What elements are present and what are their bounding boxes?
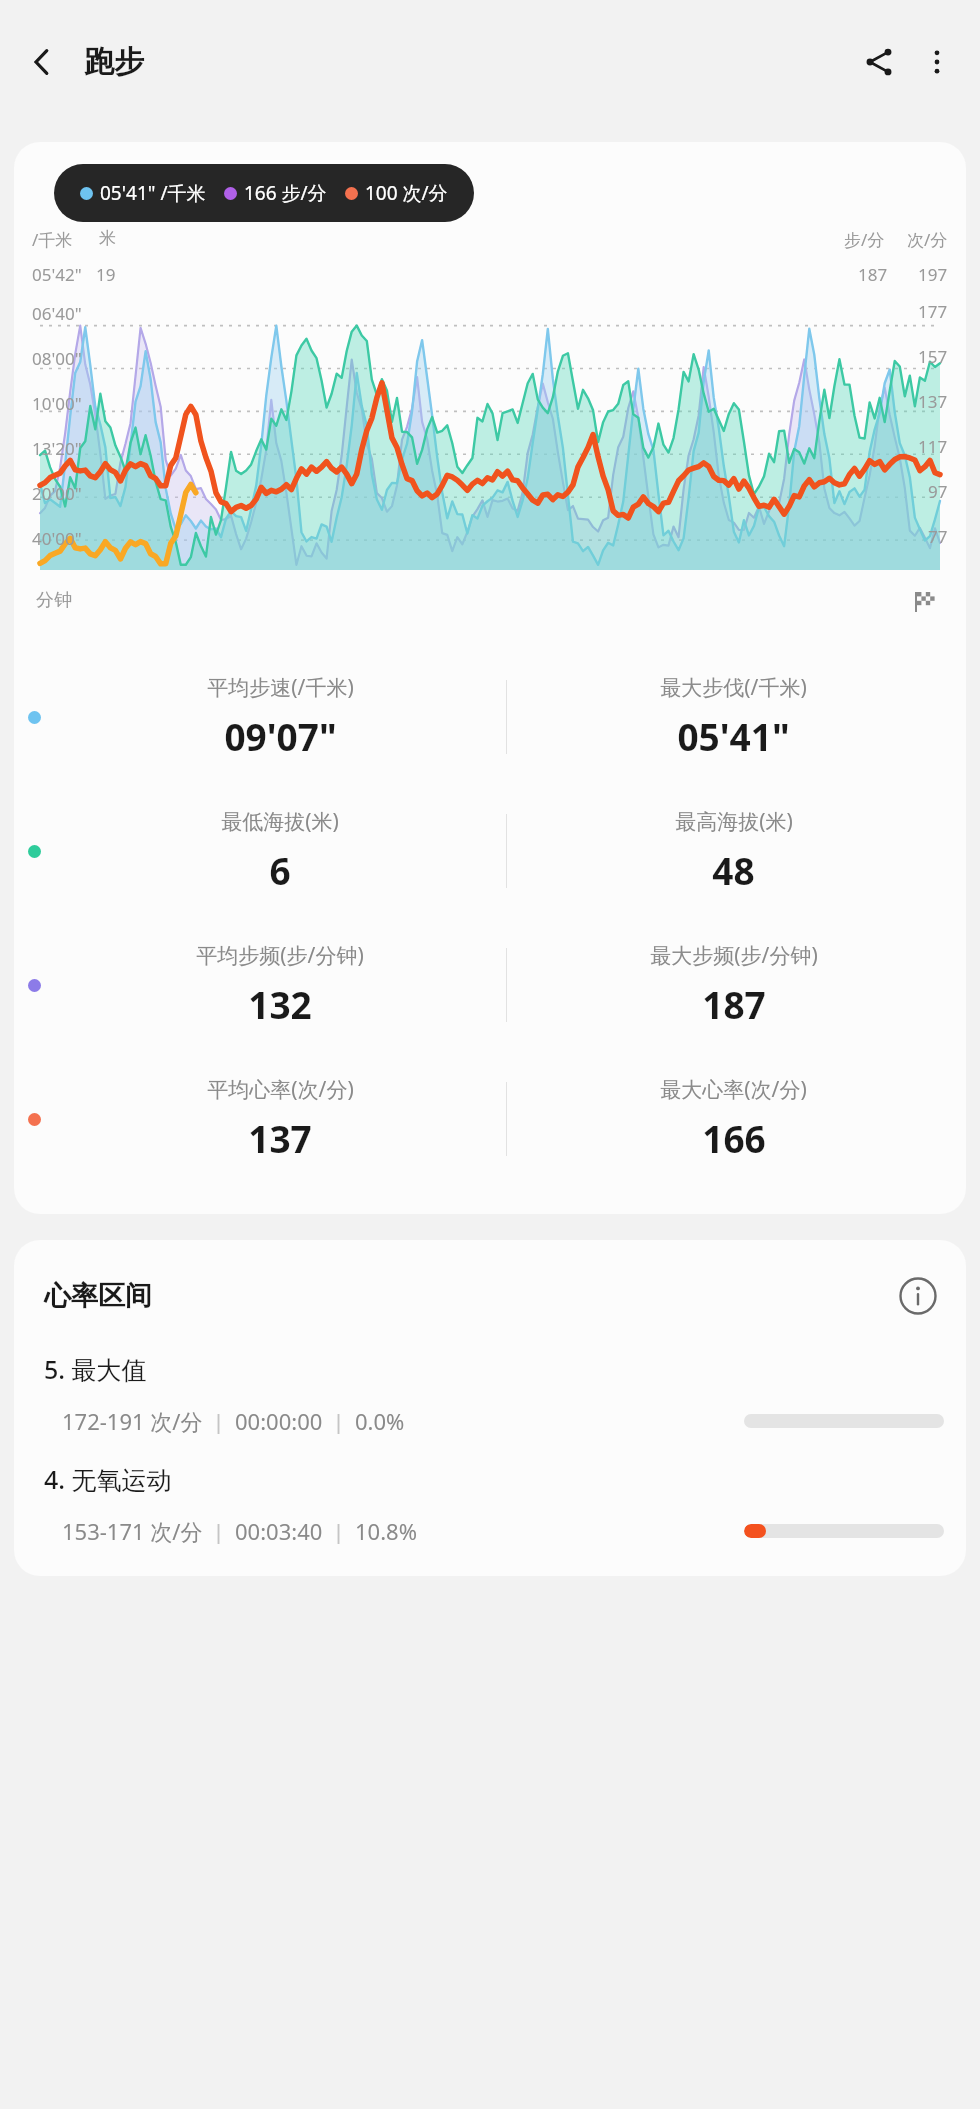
staticText: 跑步 — [84, 43, 144, 81]
staticText: | — [333, 1518, 345, 1545]
staticText: 137 — [248, 1113, 312, 1163]
staticText: 0.0% — [355, 1406, 405, 1436]
staticText: 187 — [702, 979, 766, 1029]
staticText: 132 — [248, 979, 312, 1029]
staticText: 10.8% — [355, 1516, 417, 1546]
staticText: | — [213, 1408, 225, 1435]
button[interactable]: 05'41" /千米 — [54, 164, 474, 222]
button[interactable]: 最大心率(次/分) — [507, 1052, 960, 1186]
staticText: 步/分 — [844, 228, 885, 251]
staticText: 137 — [918, 390, 948, 413]
staticText: 197 — [918, 263, 948, 286]
staticText: | — [213, 1518, 225, 1545]
staticText: 00:00:00 — [235, 1406, 323, 1436]
staticText: 00:03:40 — [235, 1516, 323, 1546]
button[interactable]: 5. 最大值 — [44, 1352, 944, 1436]
staticText: 平均步速(/千米) — [207, 673, 354, 702]
staticText: 20'00" — [32, 482, 82, 505]
staticText: 最大步伐(/千米) — [660, 673, 807, 702]
button[interactable]: Back — [14, 34, 70, 90]
staticText: 4. 无氧运动 — [44, 1462, 172, 1496]
staticText: 157 — [918, 345, 948, 368]
button[interactable]: 最大步伐(/千米) — [507, 650, 960, 784]
staticText: 177 — [918, 300, 948, 323]
staticText: 13'20" — [32, 437, 82, 460]
staticText: 117 — [918, 435, 948, 458]
staticText: 最大心率(次/分) — [660, 1075, 807, 1104]
staticText: 166 — [702, 1113, 766, 1163]
staticText: 米 — [99, 228, 116, 249]
staticText: 次/分 — [907, 228, 948, 251]
button[interactable]: 平均步频(步/分钟) — [54, 918, 506, 1052]
staticText: 平均步频(步/分钟) — [196, 941, 364, 970]
staticText: 10'00" — [32, 392, 82, 415]
staticText: 06'40" — [32, 302, 82, 325]
staticText: 最高海拔(米) — [675, 807, 793, 836]
staticText: 172-191 次/分 — [62, 1406, 203, 1436]
staticText: /千米 — [32, 228, 73, 251]
staticText: 08'00" — [32, 347, 82, 370]
staticText: 05'41" /千米 — [100, 180, 206, 206]
staticText: 187 — [858, 263, 888, 286]
staticText: 19 — [96, 263, 116, 286]
staticText: 09'07" — [224, 711, 337, 761]
button[interactable]: 最高海拔(米) — [507, 784, 960, 918]
staticText: 最大步频(步/分钟) — [650, 941, 818, 970]
button[interactable]: 最大步频(步/分钟) — [507, 918, 960, 1052]
button[interactable]: Info — [892, 1270, 944, 1322]
staticText: 最低海拔(米) — [221, 807, 339, 836]
button[interactable]: 平均心率(次/分) — [54, 1052, 506, 1186]
staticText: 分钟 — [36, 589, 72, 612]
staticText: 05'42" — [32, 263, 82, 286]
staticText: 48 — [712, 845, 755, 895]
staticText: 6 — [269, 845, 291, 895]
button[interactable]: 平均步速(/千米) — [54, 650, 506, 784]
staticText: 97 — [928, 480, 948, 503]
staticText: 77 — [928, 525, 948, 548]
staticText: 40'00" — [32, 527, 82, 550]
button[interactable]: More options — [908, 33, 966, 91]
button[interactable]: Share — [850, 33, 908, 91]
staticText: 平均心率(次/分) — [207, 1075, 354, 1104]
staticText: | — [333, 1408, 345, 1435]
staticText: 05'41" — [677, 711, 790, 761]
staticText: 166 步/分 — [244, 180, 327, 206]
staticText: 100 次/分 — [365, 180, 448, 206]
staticText: 5. 最大值 — [44, 1352, 147, 1386]
button[interactable]: 4. 无氧运动 — [44, 1462, 944, 1546]
staticText: 153-171 次/分 — [62, 1516, 203, 1546]
staticText: 心率区间 — [44, 1279, 152, 1313]
button[interactable]: 最低海拔(米) — [54, 784, 506, 918]
